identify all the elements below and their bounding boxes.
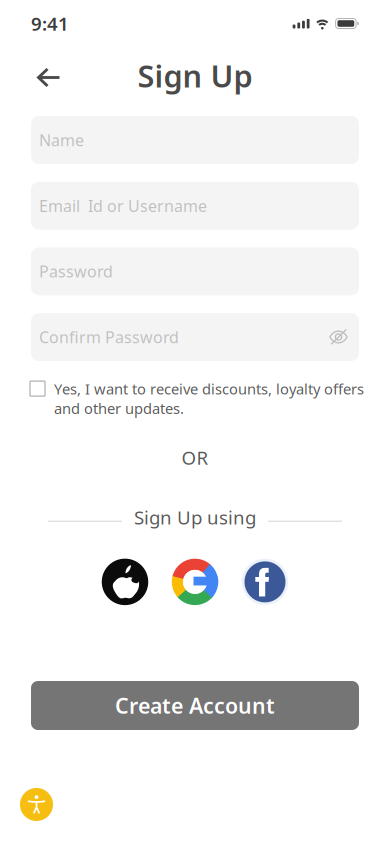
button[interactable]: Sign up with Google (172, 559, 218, 605)
button[interactable]: Create Account (31, 681, 359, 730)
staticText: Password (39, 261, 113, 282)
staticText: Sign Up (137, 55, 252, 96)
staticText: 9:41 (31, 11, 69, 36)
staticText: OR (181, 445, 208, 470)
button[interactable]: Accessibility options (20, 788, 53, 821)
staticText: Email Id or Username (39, 195, 207, 216)
staticText: Sign Up using (134, 505, 256, 530)
staticText: Yes, I want to receive discounts, loyalt… (54, 379, 364, 418)
staticText: Confirm Password (39, 326, 179, 348)
staticText: Create Account (115, 691, 275, 720)
button[interactable]: Sign up with Facebook (242, 559, 288, 605)
button[interactable]: Sign up with Apple (102, 559, 148, 605)
button[interactable]: Back (27, 55, 71, 99)
staticText: Name (39, 129, 84, 151)
button[interactable]: Yes, I want to receive discounts, loyalt… (30, 379, 378, 418)
